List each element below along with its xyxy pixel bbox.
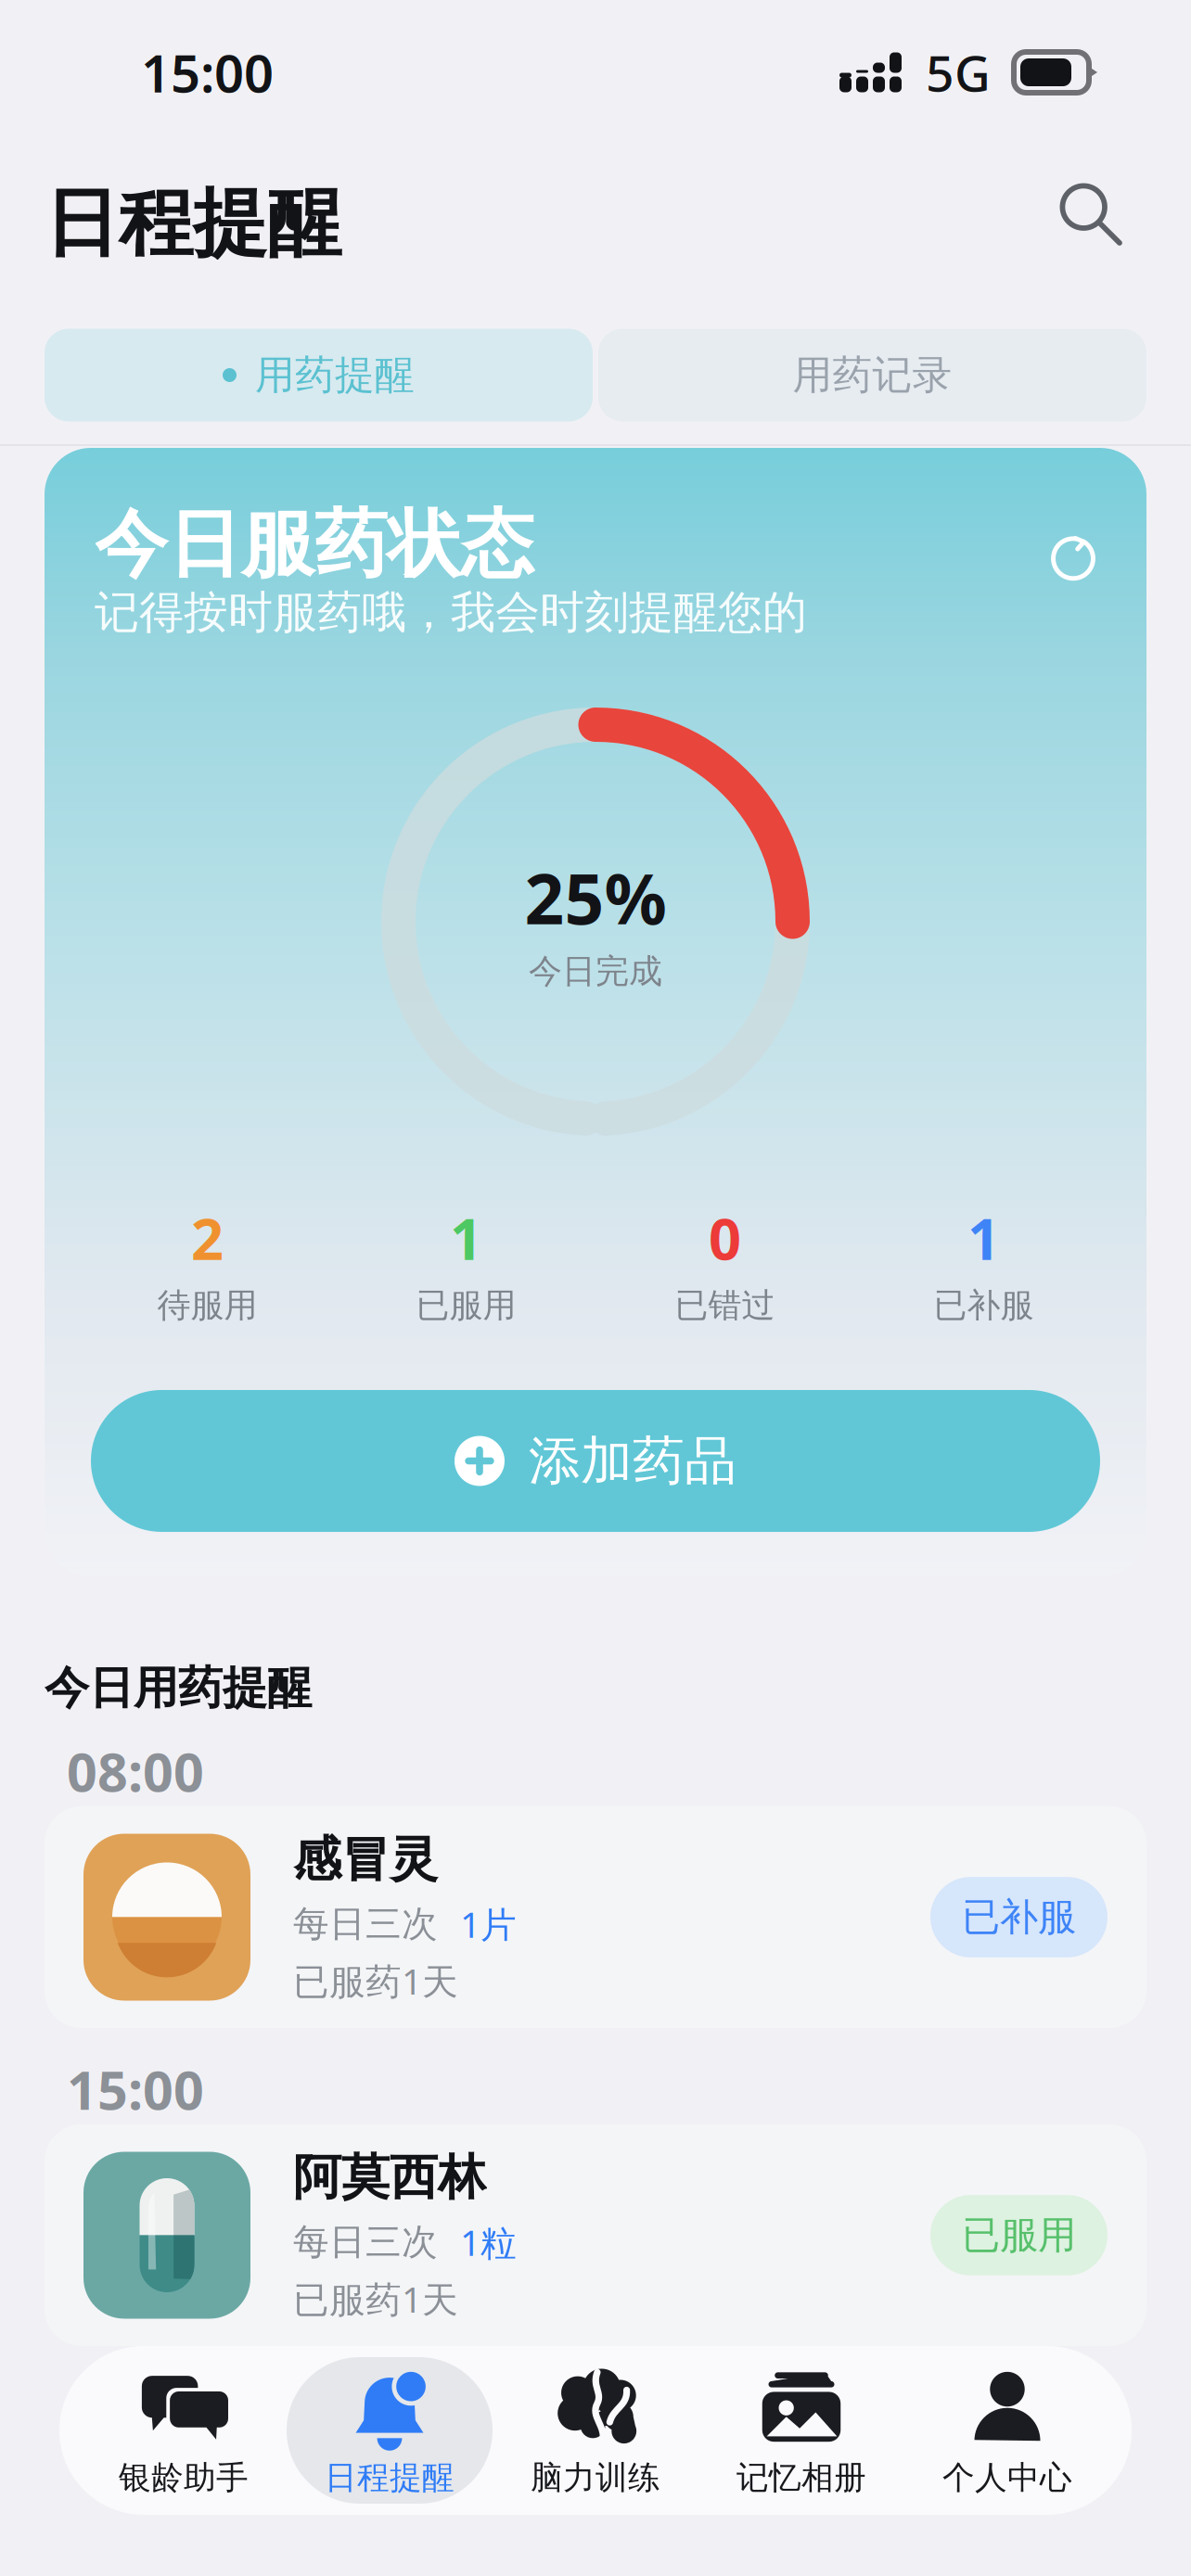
button[interactable]: 用药记录 xyxy=(598,329,1146,421)
staticText: 5G xyxy=(926,40,991,105)
staticText: 用药提醒 xyxy=(255,351,415,399)
staticText: 已服药1天 xyxy=(293,2275,458,2323)
staticText: 每日三次 xyxy=(293,2220,438,2264)
staticText: 银龄助手 xyxy=(119,2458,249,2497)
button[interactable]: 记忆相册 xyxy=(698,2357,904,2504)
staticText: 今日服药状态 xyxy=(95,500,534,589)
button[interactable]: 用药提醒 xyxy=(45,329,593,421)
button[interactable]: 银龄助手 xyxy=(81,2357,287,2504)
staticText: 15:00 xyxy=(67,2054,204,2124)
staticText: 2 xyxy=(191,1200,224,1276)
button[interactable]: 日程提醒 xyxy=(287,2357,493,2504)
staticText: 已错过 xyxy=(675,1285,775,1326)
staticText: 用药记录 xyxy=(793,351,952,399)
staticText: 记得按时服药哦，我会时刻提醒您的 xyxy=(95,585,807,640)
button[interactable]: 感冒灵 xyxy=(45,1806,1146,2028)
staticText: 1 xyxy=(967,1200,1000,1276)
button[interactable]: 刷新 xyxy=(1041,524,1106,589)
staticText: 0 xyxy=(709,1200,741,1276)
staticText: 日程提醒 xyxy=(45,178,341,269)
button[interactable]: 脑力训练 xyxy=(493,2357,698,2504)
staticText: 08:00 xyxy=(67,1736,204,1806)
button[interactable]: 添加药品 xyxy=(91,1390,1100,1532)
staticText: 已服用 xyxy=(962,2212,1076,2259)
staticText: 阿莫西林 xyxy=(293,2148,486,2207)
staticText: 已服药1天 xyxy=(293,1957,458,2005)
staticText: 今日用药提醒 xyxy=(45,1661,312,1715)
staticText: 日程提醒 xyxy=(325,2458,455,2497)
staticText: 15:00 xyxy=(141,38,274,107)
staticText: 1片 xyxy=(460,1900,517,1948)
staticText: 脑力训练 xyxy=(531,2458,660,2497)
staticText: 个人中心 xyxy=(942,2458,1072,2497)
staticText: 已补服 xyxy=(962,1894,1076,1941)
staticText: 添加药品 xyxy=(529,1429,736,1493)
staticText: 已补服 xyxy=(934,1285,1034,1326)
staticText: 1粒 xyxy=(460,2218,517,2266)
staticText: 记忆相册 xyxy=(736,2458,866,2497)
button[interactable]: 阿莫西林 xyxy=(45,2124,1146,2346)
staticText: 感冒灵 xyxy=(293,1830,438,1889)
staticText: 25% xyxy=(525,852,666,944)
staticText: 今日完成 xyxy=(529,951,662,992)
staticText: 已服用 xyxy=(416,1285,516,1326)
button[interactable]: 搜索 xyxy=(1051,174,1129,252)
button[interactable]: 个人中心 xyxy=(904,2357,1110,2504)
staticText: 1 xyxy=(450,1200,482,1276)
staticText: 每日三次 xyxy=(293,1902,438,1946)
staticText: 待服用 xyxy=(157,1285,257,1326)
